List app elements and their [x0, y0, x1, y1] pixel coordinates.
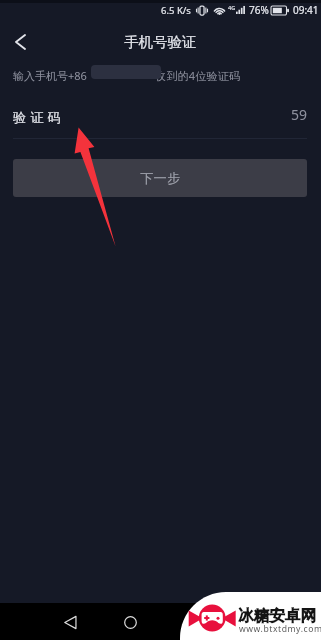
button[interactable]: Home [116, 608, 144, 636]
staticText: 59 [291, 105, 308, 124]
button[interactable]: Back [56, 608, 84, 636]
button[interactable]: 下一步 [13, 159, 307, 197]
staticText: 输入手机号+86 [13, 68, 87, 83]
staticText: 6.5 K/s [161, 4, 191, 17]
staticText: 收到的4位验证码 [155, 68, 241, 83]
staticText: 验证码 [13, 109, 66, 125]
button[interactable]: Back [6, 28, 34, 56]
staticText: 冰糖安卓网 [238, 606, 317, 626]
staticText: 76% [249, 3, 269, 17]
staticText: 4G [228, 4, 236, 11]
staticText: 手机号验证 [124, 33, 197, 51]
button[interactable]: Back [55, 603, 321, 640]
staticText: www.btxtdmy.com [239, 623, 321, 635]
staticText: 下一步 [140, 170, 181, 187]
staticText: 09:41 [293, 3, 319, 17]
